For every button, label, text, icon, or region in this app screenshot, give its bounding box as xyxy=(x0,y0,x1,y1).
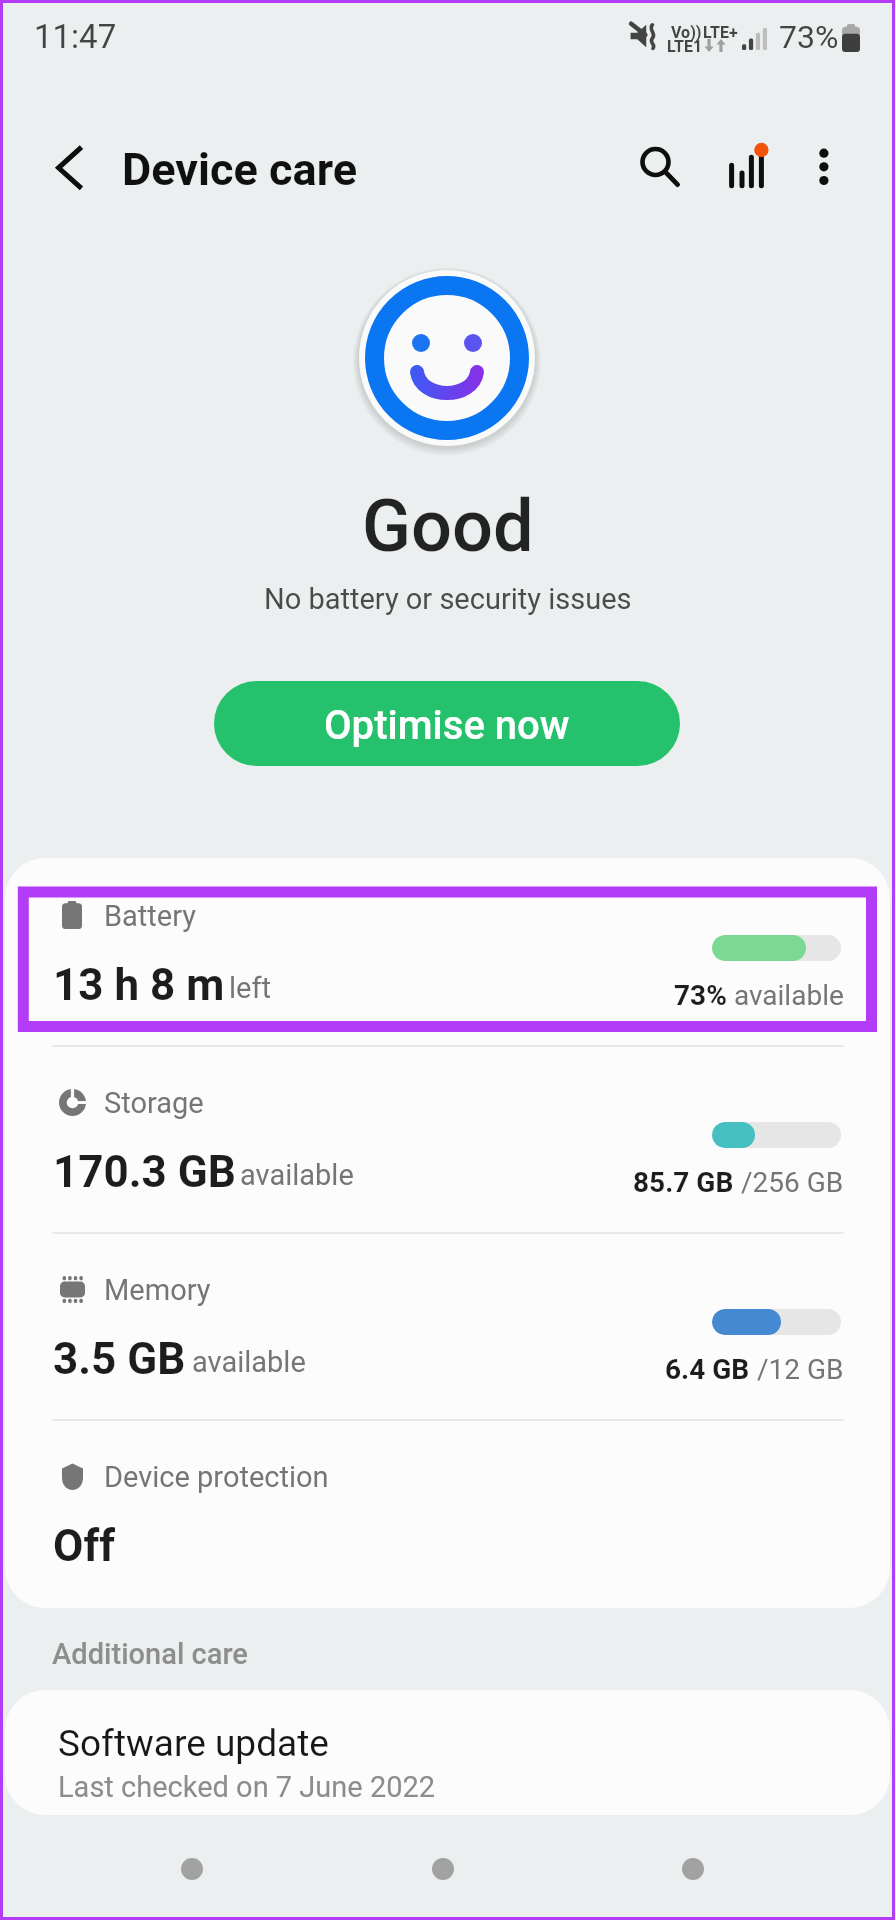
staticText: Off xyxy=(53,1520,115,1572)
button[interactable]: Optimise now xyxy=(214,681,680,766)
staticText: Vo)) xyxy=(671,23,702,42)
button[interactable]: More options xyxy=(784,128,864,208)
staticText: Device care xyxy=(122,143,357,196)
staticText: /12 GB xyxy=(750,1353,844,1386)
button[interactable]: Recent apps xyxy=(122,1820,262,1918)
staticText: 3.5 GB xyxy=(53,1333,186,1385)
staticText: LTE+ xyxy=(703,23,738,42)
staticText: LTE1 xyxy=(667,37,703,56)
staticText: available xyxy=(192,1345,306,1379)
button[interactable]: Memory xyxy=(5,1232,890,1419)
button[interactable]: Storage xyxy=(5,1045,890,1232)
staticText: Last checked on 7 June 2022 xyxy=(58,1770,436,1804)
staticText: left xyxy=(229,971,271,1005)
staticText: /256 GB xyxy=(734,1166,844,1199)
button[interactable]: Back xyxy=(623,1820,763,1918)
staticText: Battery xyxy=(104,899,196,933)
staticText: 6.4 GB xyxy=(665,1353,750,1386)
staticText: available xyxy=(727,979,844,1012)
button[interactable]: Home xyxy=(373,1820,513,1918)
button[interactable]: Search xyxy=(618,128,698,208)
staticText: Additional care xyxy=(52,1637,248,1671)
staticText: 170.3 GB xyxy=(53,1146,236,1198)
staticText: 73% xyxy=(779,18,839,56)
staticText: Memory xyxy=(104,1273,211,1307)
button[interactable]: Battery xyxy=(5,858,890,1045)
button[interactable]: Device protection xyxy=(5,1419,890,1606)
staticText: 11:47 xyxy=(34,17,117,56)
staticText: Storage xyxy=(104,1086,204,1120)
staticText: Software update xyxy=(58,1722,329,1765)
button[interactable]: Back xyxy=(29,128,109,208)
staticText: 13 h 8 m xyxy=(53,959,225,1011)
staticText: Optimise now xyxy=(324,702,570,749)
button[interactable]: Software update xyxy=(5,1690,890,1815)
staticText: Good xyxy=(362,484,534,568)
staticText: 85.7 GB xyxy=(633,1166,734,1199)
staticText: Device protection xyxy=(104,1460,329,1494)
staticText: No battery or security issues xyxy=(264,582,632,616)
staticText: available xyxy=(240,1158,354,1192)
staticText: 73% xyxy=(674,979,727,1012)
button[interactable]: Usage statistics xyxy=(706,128,786,208)
